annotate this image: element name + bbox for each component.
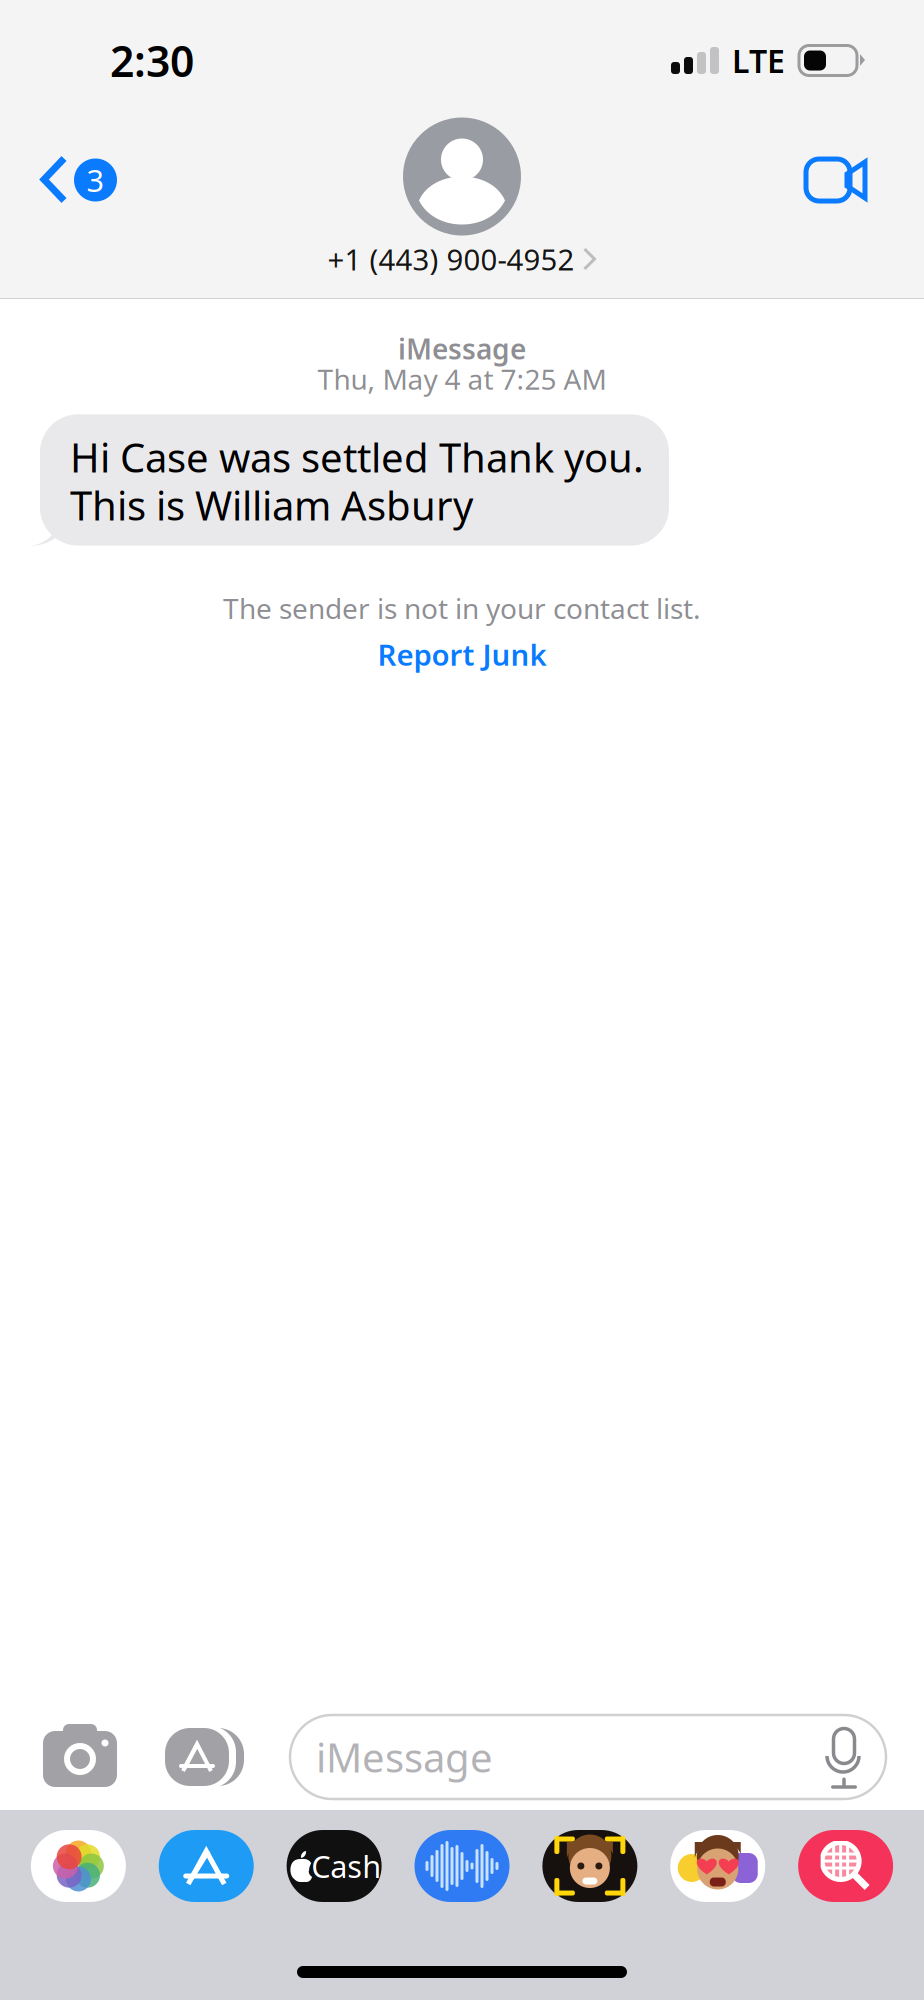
button[interactable]: Memoji stickers [540, 1828, 639, 1904]
staticText: iMessage [316, 1730, 493, 1783]
staticText: This is William Asbury [70, 478, 473, 532]
staticText: 3 [86, 160, 104, 200]
button[interactable]: App Store [157, 1828, 256, 1904]
staticText: iMessage [398, 330, 526, 367]
button[interactable]: FaceTime video call [781, 134, 875, 226]
staticText: +1 (443) 900-4952 [327, 239, 574, 278]
button[interactable]: Report Junk [357, 627, 566, 682]
staticText: LTE [732, 39, 785, 82]
button[interactable]: Photos [29, 1828, 128, 1904]
staticText: Report Junk [377, 635, 546, 674]
button[interactable]: Back, 3 unread [24, 134, 133, 226]
button[interactable]: Apple Cash [285, 1828, 384, 1904]
staticText: The sender is not in your contact list. [223, 590, 701, 627]
staticText: 2:30 [110, 32, 194, 89]
button[interactable]: Apps [163, 1715, 247, 1799]
staticText: Thu, May 4 at 7:25 AM [317, 360, 606, 397]
button[interactable]: Image search [796, 1828, 895, 1904]
button[interactable]: Camera [42, 1715, 118, 1799]
staticText: Hi Case was settled Thank you. [70, 430, 644, 483]
button[interactable]: Audio messages [412, 1828, 511, 1904]
staticText: Cash [311, 1846, 381, 1886]
button[interactable]: iMessage text field [290, 1715, 886, 1799]
button[interactable]: Emoji stickers [668, 1828, 767, 1904]
